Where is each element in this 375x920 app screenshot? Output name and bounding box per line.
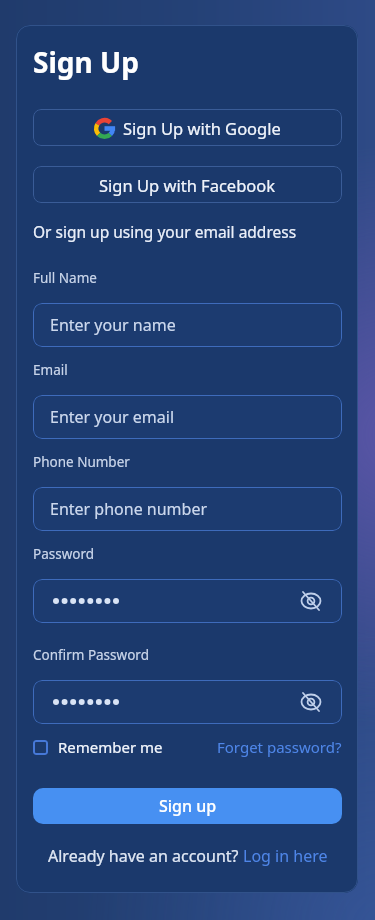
staticText: Full Name — [33, 269, 97, 287]
staticText: Enter your email — [50, 406, 175, 428]
button[interactable] — [33, 579, 342, 623]
staticText: Sign Up with Facebook — [99, 174, 276, 196]
button[interactable]: Log in here — [243, 845, 328, 867]
staticText: Sign Up with Google — [123, 117, 281, 139]
button[interactable]: Enter your name — [33, 303, 342, 347]
button[interactable]: Sign Up with Facebook — [33, 166, 342, 203]
staticText: Enter phone number — [50, 498, 208, 520]
staticText: Remember me — [58, 737, 163, 757]
staticText: Email — [33, 361, 68, 379]
button[interactable]: Enter your email — [33, 395, 342, 439]
staticText: Confirm Password — [33, 646, 149, 664]
staticText: Or sign up using your email address — [33, 221, 297, 242]
staticText: Sign Up — [33, 43, 139, 81]
button[interactable] — [33, 680, 342, 724]
button[interactable]: Enter phone number — [33, 487, 342, 531]
staticText: Already have an account? — [48, 845, 243, 867]
staticText: Sign up — [159, 795, 217, 817]
button[interactable]: Sign up — [33, 788, 342, 824]
staticText: Enter your name — [50, 314, 176, 336]
button[interactable]: Sign Up with Google — [33, 109, 342, 146]
staticText: Password — [33, 545, 95, 563]
button[interactable]: Forget password? — [217, 737, 342, 757]
staticText: Phone Number — [33, 453, 130, 471]
button[interactable] — [33, 740, 48, 755]
